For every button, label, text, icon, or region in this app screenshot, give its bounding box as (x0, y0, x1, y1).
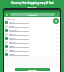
staticText: Grocery list shopping easy & fast (11, 1, 54, 5)
button[interactable]: Rice 1kg (4, 40, 60, 44)
staticText: ADD ITEM (28, 69, 37, 71)
button[interactable]: Milk 2L (4, 20, 60, 24)
staticText: Search list (28, 14, 37, 16)
staticText: Shopping list (5, 18, 16, 20)
button[interactable]: Search list (10, 13, 55, 16)
staticText: Bread (9, 25, 14, 27)
button[interactable]: Apples (4, 44, 60, 48)
button[interactable]: Eggs 12 (4, 32, 60, 36)
staticText: with lists (27, 6, 37, 9)
staticText: Rice 1kg (9, 41, 16, 43)
staticText: Coffee (9, 49, 15, 51)
button[interactable]: More options (56, 13, 59, 16)
button[interactable]: ADD ITEM (15, 68, 50, 71)
button[interactable]: Chicken (4, 36, 60, 40)
staticText: Eggs 12 (9, 33, 16, 35)
button[interactable]: Bread (4, 24, 60, 28)
button[interactable]: Cheese (4, 52, 60, 56)
staticText: Chicken (9, 37, 16, 39)
staticText: Apples (9, 45, 15, 47)
staticText: Tomatoes (9, 29, 17, 31)
button[interactable]: Tomatoes (4, 28, 60, 32)
staticText: Cheese (9, 53, 15, 55)
button[interactable]: Coffee (4, 48, 60, 52)
staticText: Milk 2L (9, 21, 15, 23)
button[interactable]: Add item (53, 18, 59, 24)
button[interactable]: Menu (5, 13, 9, 17)
